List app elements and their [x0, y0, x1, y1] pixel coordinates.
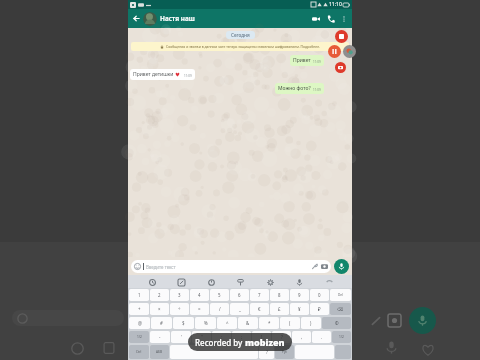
staticText: :	[221, 334, 223, 340]
staticText: Рус	[282, 350, 288, 354]
button[interactable]: Сообщения и звонки в данном чате теперь …	[134, 44, 346, 49]
staticText: Привет	[293, 57, 311, 64]
button[interactable]: 1	[129, 289, 149, 301]
staticText: *	[268, 320, 271, 326]
button[interactable]: =	[190, 303, 209, 315]
button[interactable]: ¥	[290, 303, 309, 315]
button[interactable]: Record voice message	[334, 259, 349, 274]
staticText: Можно фото?	[278, 85, 311, 92]
button[interactable]: Video call	[308, 11, 323, 26]
button[interactable]: Сегодня	[231, 32, 250, 38]
button[interactable]: ÷	[170, 303, 189, 315]
button[interactable]: 9	[290, 289, 309, 301]
button[interactable]: €	[250, 303, 269, 315]
button[interactable]: ,	[292, 331, 311, 343]
button[interactable]: Recorder menu	[343, 45, 356, 58]
button[interactable]: )	[301, 317, 321, 329]
button[interactable]: Настя наш	[160, 14, 308, 23]
button[interactable]: Keyboard tool	[175, 276, 187, 288]
staticText: 11:10	[329, 1, 342, 8]
staticText: 1	[138, 292, 141, 298]
button[interactable]: $	[173, 317, 194, 329]
button[interactable]: Можно фото?	[278, 85, 321, 92]
button[interactable]: Pause recording	[328, 45, 341, 58]
button[interactable]: ?	[259, 345, 274, 359]
staticText: mobizen	[245, 336, 285, 348]
button[interactable]: 7	[250, 289, 269, 301]
button[interactable]: 1/2	[332, 331, 351, 343]
button[interactable]: (	[280, 317, 300, 329]
button[interactable]: Привет	[293, 57, 321, 64]
button[interactable]: ₽	[310, 303, 329, 315]
staticText: ?	[281, 334, 283, 340]
button[interactable]: !	[252, 331, 271, 343]
staticText: '	[181, 334, 182, 340]
button[interactable]: Привет детишки	[133, 71, 192, 78]
staticText: Сообщения и звонки в данном чате теперь …	[166, 44, 320, 49]
button[interactable]: Stop recording	[335, 30, 348, 43]
staticText: 0	[318, 292, 321, 298]
staticText: -	[159, 334, 161, 340]
button[interactable]	[143, 12, 157, 26]
button[interactable]: ⌫	[330, 303, 351, 315]
button[interactable]: Ф	[322, 317, 351, 329]
button[interactable]: Ctrl	[129, 345, 149, 359]
button[interactable]: 3	[170, 289, 189, 301]
button[interactable]: Введите текст	[134, 260, 328, 273]
button[interactable]: .	[312, 331, 331, 343]
button[interactable]: Keyboard tool	[234, 276, 246, 288]
button[interactable]: &	[238, 317, 258, 329]
button[interactable]: #	[151, 317, 172, 329]
button[interactable]: 8	[270, 289, 289, 301]
button[interactable]: ?	[272, 331, 291, 343]
button[interactable]: 5	[210, 289, 229, 301]
button[interactable]: АБВ	[150, 345, 169, 359]
button[interactable]: 4	[190, 289, 209, 301]
staticText: +	[138, 306, 141, 312]
button[interactable]: '	[171, 331, 191, 343]
staticText: Ф	[335, 320, 339, 326]
button[interactable]: _	[230, 303, 249, 315]
button[interactable]: +	[129, 303, 149, 315]
staticText: 5	[218, 292, 221, 298]
button[interactable]: :	[212, 331, 231, 343]
button[interactable]: Capture screenshot	[335, 62, 346, 73]
button[interactable]: @	[129, 317, 150, 329]
staticText: Сегодня	[231, 32, 250, 38]
button[interactable]: -	[150, 331, 170, 343]
button[interactable]: 0	[310, 289, 329, 301]
staticText: Настя наш	[160, 14, 195, 23]
button[interactable]: ;	[232, 331, 251, 343]
staticText: ₽	[318, 306, 321, 312]
button[interactable]: Keyboard tool	[264, 276, 276, 288]
button[interactable]: "	[192, 331, 211, 343]
staticText: 6	[238, 292, 241, 298]
staticText: 9	[298, 292, 301, 298]
button[interactable]: Keyboard tool	[205, 276, 217, 288]
button[interactable]: 2	[150, 289, 169, 301]
staticText: ;	[241, 334, 243, 340]
staticText: ^	[226, 320, 229, 326]
button[interactable]: 1/2	[129, 331, 149, 343]
staticText: @	[138, 320, 142, 326]
staticText: _	[239, 306, 241, 312]
button[interactable]: Voice call	[323, 11, 338, 26]
button[interactable]: Del	[330, 289, 351, 301]
button[interactable]: Space	[170, 345, 258, 359]
button[interactable]: 6	[230, 289, 249, 301]
button[interactable]: Keyboard tool	[146, 276, 158, 288]
button[interactable]: £	[270, 303, 289, 315]
button[interactable]: Back	[130, 12, 143, 25]
button[interactable]: %	[195, 317, 216, 329]
button[interactable]: ×	[150, 303, 169, 315]
button[interactable]: *	[259, 317, 279, 329]
button[interactable]: Рус	[275, 345, 294, 359]
button[interactable]: More options	[338, 13, 350, 25]
staticText: АБВ	[156, 350, 163, 354]
button[interactable]: /	[210, 303, 229, 315]
button[interactable]: Keyboard tool	[293, 276, 305, 288]
button[interactable]: ^	[217, 317, 237, 329]
button[interactable]: Keyboard tool	[323, 276, 335, 288]
